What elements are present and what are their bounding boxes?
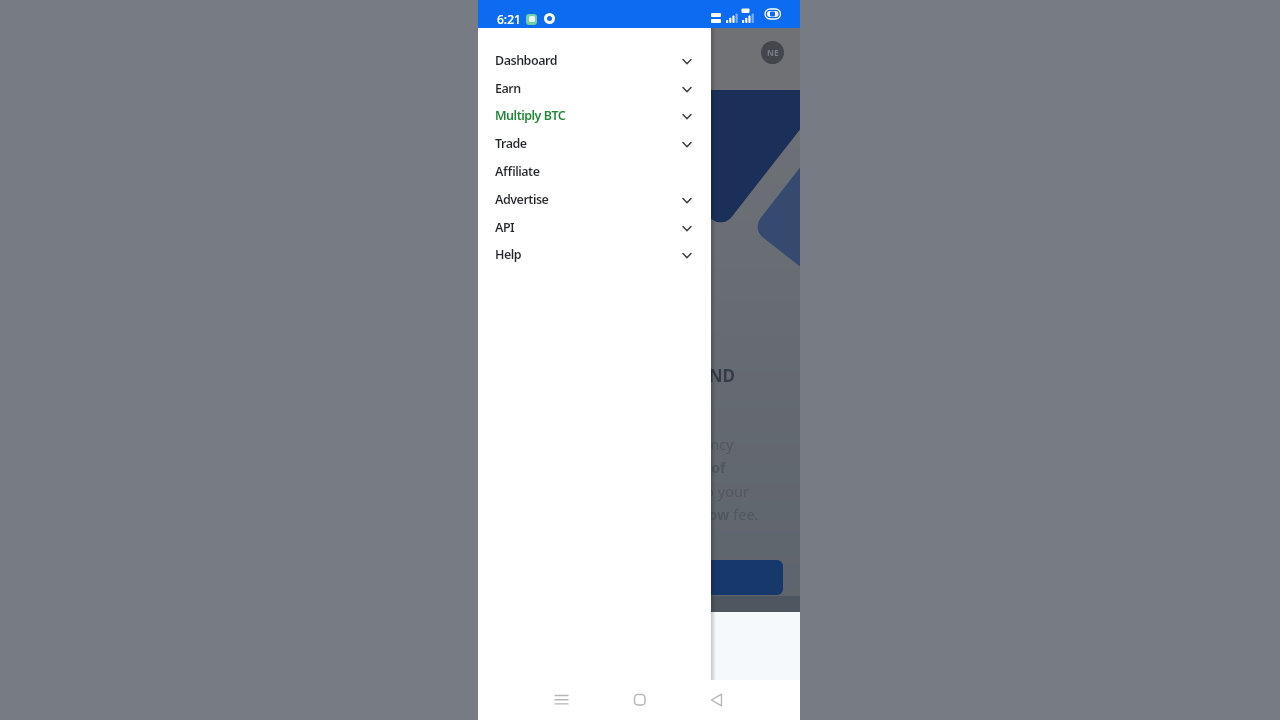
- button[interactable]: API: [478, 213, 711, 241]
- button[interactable]: Affiliate: [478, 157, 711, 185]
- staticText: Help: [495, 246, 522, 263]
- staticText: Earn: [495, 80, 521, 97]
- staticText: API: [495, 219, 515, 236]
- staticText: NE: [767, 47, 779, 59]
- button[interactable]: [627, 687, 653, 713]
- staticText: Advertise: [495, 191, 549, 208]
- staticText: 6:21: [497, 11, 521, 27]
- button[interactable]: Advertise: [478, 185, 711, 213]
- staticText: of: [711, 457, 726, 477]
- button[interactable]: Trade: [478, 129, 711, 157]
- staticText: low fee.: [704, 504, 759, 524]
- button[interactable]: [548, 687, 574, 713]
- staticText: AND: [697, 364, 736, 387]
- staticText: Multiply BTC: [495, 107, 566, 124]
- staticText: ency: [702, 434, 734, 454]
- button[interactable]: [705, 687, 731, 713]
- staticText: Affiliate: [495, 163, 540, 180]
- button[interactable]: Dashboard: [478, 46, 711, 74]
- staticText: Dashboard: [495, 52, 557, 69]
- staticText: Trade: [495, 135, 527, 152]
- button[interactable]: Multiply BTC: [478, 101, 711, 129]
- staticText: to your: [700, 481, 749, 501]
- button[interactable]: Earn: [478, 74, 711, 102]
- button[interactable]: Help: [478, 240, 711, 268]
